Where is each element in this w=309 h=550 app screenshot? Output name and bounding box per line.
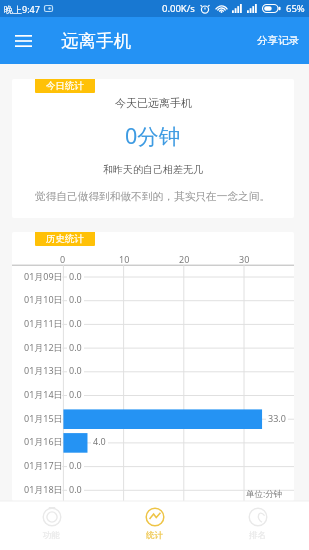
staticText: 晚上9:47 [4,3,40,15]
staticText: 10 [119,253,130,265]
staticText: 0分钟 [125,121,181,150]
staticText: 0.0 [69,341,82,353]
staticText: 分享记录 [257,34,299,47]
staticText: 今天已远离手机 [115,96,192,110]
button[interactable]: Menu [0,17,47,64]
staticText: 01月10日 [24,293,63,305]
staticText: 65% [286,2,305,15]
staticText: 和昨天的自己相差无几 [103,163,203,176]
staticText: 统计 [146,530,163,541]
staticText: 单位:分钟 [246,488,283,500]
staticText: 排名 [249,530,266,541]
staticText: 33.0 [268,412,286,424]
staticText: 01月16日 [24,435,63,447]
staticText: 0.0 [69,388,82,400]
staticText: 历史统计 [46,233,84,245]
button[interactable]: 统计 [103,501,206,550]
button[interactable]: 排名 [206,501,309,550]
staticText: 今日统计 [46,80,84,92]
staticText: 01月14日 [24,388,63,400]
staticText: 0.0 [69,317,82,329]
staticText: 01月17日 [24,459,63,471]
staticText: 20 [179,253,190,265]
staticText: 4.0 [93,435,106,447]
staticText: 0.0 [69,483,82,495]
staticText: 01月15日 [24,412,63,424]
staticText: 0.0 [69,293,82,305]
staticText: 01月18日 [24,483,63,495]
staticText: 0.0 [69,364,82,376]
staticText: 0.0 [69,270,82,282]
staticText: 30 [239,253,250,265]
staticText: 0.0 [69,459,82,471]
button[interactable]: 分享记录 [243,17,309,64]
staticText: 0.00K/s [162,2,195,15]
staticText: 01月13日 [24,364,63,376]
button[interactable]: 功能 [0,501,103,550]
staticText: 01月11日 [24,317,63,329]
staticText: 功能 [43,530,60,541]
staticText: 觉得自己做得到和做不到的，其实只在一念之间。 [35,190,271,203]
staticText: 01月12日 [24,341,63,353]
staticText: 01月09日 [24,270,63,282]
staticText: 0 [60,253,66,265]
staticText: 远离手机 [61,30,131,52]
